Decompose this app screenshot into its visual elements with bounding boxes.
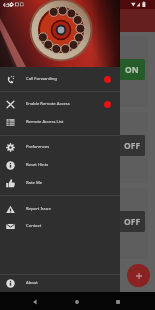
button[interactable]: Recents (113, 297, 123, 307)
staticText: Enable Remote Access (26, 101, 70, 107)
staticText: Preferences (26, 144, 50, 150)
button[interactable]: ON (119, 59, 145, 80)
button[interactable]: Home (72, 297, 82, 307)
button[interactable]: About (0, 274, 120, 292)
staticText: About (26, 280, 38, 286)
button[interactable]: OFF (7, 112, 148, 183)
button[interactable]: Preferences (0, 138, 120, 156)
staticText: ON (125, 64, 139, 76)
staticText: OFF (124, 216, 141, 228)
button[interactable]: Back (30, 297, 40, 307)
button[interactable]: Report Issue (0, 200, 120, 218)
button[interactable]: Contact (0, 217, 120, 235)
button[interactable]: ON (7, 36, 148, 107)
staticText: Contact (26, 223, 42, 229)
button[interactable]: Enable Remote Access (0, 95, 120, 113)
staticText: OFF (124, 140, 141, 152)
staticText: Call Forwarding (26, 76, 57, 82)
button[interactable]: OFF (7, 188, 148, 259)
staticText: Remote Access List (26, 119, 64, 125)
button[interactable]: OFF (119, 211, 145, 232)
staticText: Rate Me (26, 180, 43, 186)
staticText: 4:36 (3, 2, 13, 8)
button[interactable]: Reset Hints (0, 156, 120, 174)
button[interactable]: OFF (119, 135, 145, 156)
button[interactable]: Add (127, 264, 150, 287)
button[interactable]: Call Forwarding (0, 70, 120, 88)
staticText: Reset Hints (26, 162, 49, 168)
button[interactable]: Rate Me (0, 174, 120, 192)
button[interactable]: Remote Access List (0, 113, 120, 131)
staticText: Report Issue (26, 206, 51, 212)
